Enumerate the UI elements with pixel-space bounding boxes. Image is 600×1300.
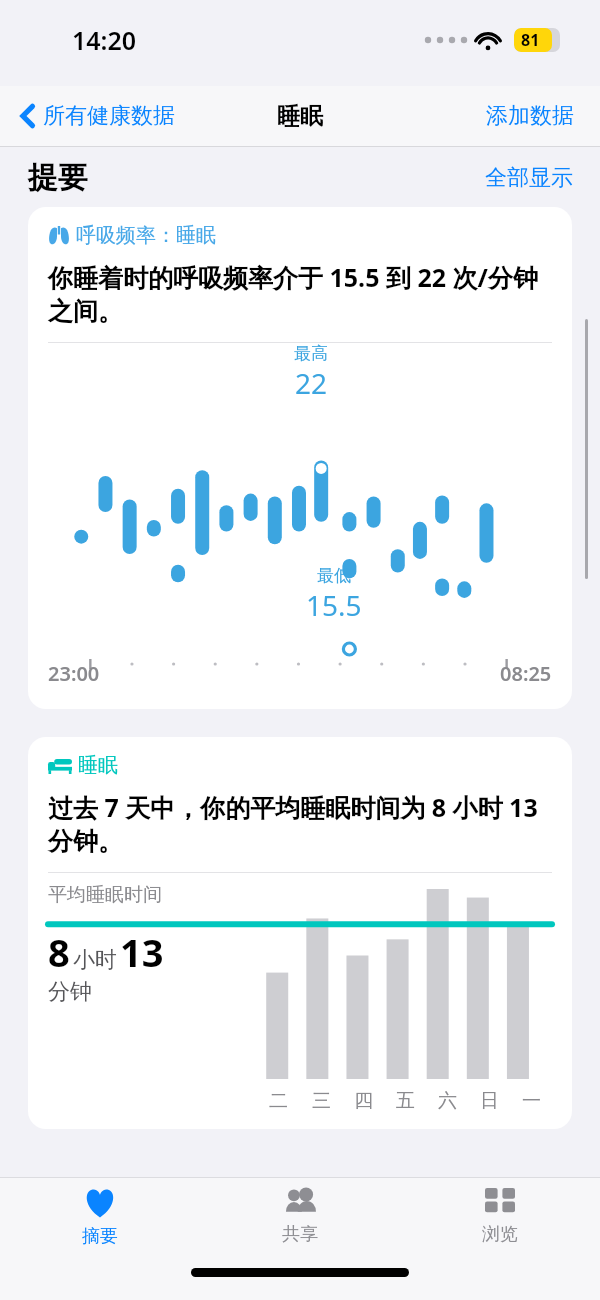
staticText: 睡眠 xyxy=(277,102,323,131)
staticText: 提要 xyxy=(28,159,88,197)
other: 睡眠 xyxy=(48,757,72,774)
staticText: 最低 xyxy=(317,565,351,586)
other: 呼吸频率 xyxy=(48,226,70,245)
staticText: 过去 7 天中，你的平均睡眠时间为 8 小时 13 分钟。 xyxy=(48,790,552,858)
staticText: 23:00 xyxy=(48,660,100,687)
staticText: 共享 xyxy=(282,1223,318,1246)
staticText: 二 xyxy=(269,1089,288,1113)
staticText: 五 xyxy=(396,1089,415,1113)
button[interactable]: 睡眠 xyxy=(28,737,572,1129)
button[interactable]: 全部显示 xyxy=(482,161,576,195)
staticText: 睡眠 xyxy=(78,753,118,778)
staticText: 日 xyxy=(480,1089,499,1113)
staticText: 15.5 xyxy=(306,586,362,624)
staticText: 81 xyxy=(521,29,540,51)
staticText: 小时 xyxy=(73,946,117,974)
staticText: 一 xyxy=(522,1089,541,1113)
staticText: 13 xyxy=(120,926,164,978)
staticText: 平均睡眠时间 xyxy=(48,883,162,907)
button[interactable]: 摘要 xyxy=(0,1178,200,1260)
button[interactable]: 浏览 xyxy=(400,1178,600,1260)
staticText: 你睡着时的呼吸频率介于 15.5 到 22 次/分钟之间。 xyxy=(48,260,552,328)
staticText: 所有健康数据 xyxy=(43,102,175,130)
staticText: 浏览 xyxy=(482,1223,518,1246)
staticText: 22 xyxy=(295,364,328,402)
staticText: 分钟 xyxy=(48,978,92,1006)
staticText: 摘要 xyxy=(82,1225,118,1248)
button[interactable]: 呼吸频率 xyxy=(28,207,572,709)
button[interactable]: 添加数据 xyxy=(482,98,578,134)
button[interactable]: 共享 xyxy=(200,1178,400,1260)
staticText: 最高 xyxy=(294,343,328,364)
staticText: 08:25 xyxy=(500,660,552,687)
button[interactable]: 所有健康数据 xyxy=(16,96,179,136)
staticText: 六 xyxy=(438,1089,457,1113)
staticText: 14:20 xyxy=(72,23,137,57)
staticText: 呼吸频率：睡眠 xyxy=(76,223,216,248)
staticText: 8 xyxy=(48,926,70,978)
staticText: 三 xyxy=(312,1089,331,1113)
staticText: 四 xyxy=(354,1089,373,1113)
